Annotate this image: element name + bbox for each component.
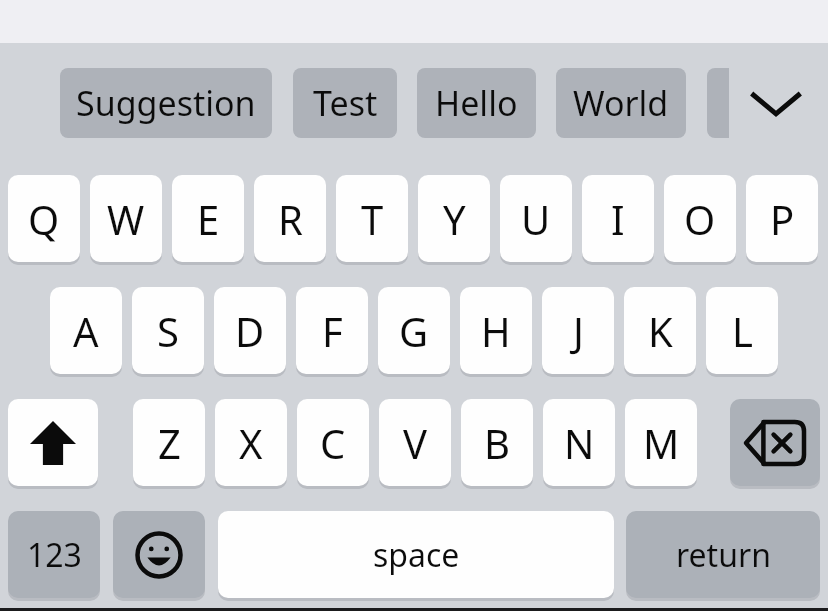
staticText: C: [320, 416, 346, 470]
button[interactable]: Emoji: [113, 511, 205, 598]
button[interactable]: U: [500, 175, 572, 262]
button[interactable]: Y: [418, 175, 490, 262]
button[interactable]: V: [379, 399, 451, 486]
button[interactable]: Backspace: [730, 399, 820, 486]
staticText: F: [322, 304, 343, 358]
staticText: G: [399, 304, 429, 358]
button[interactable]: C: [297, 399, 369, 486]
staticText: T: [361, 192, 384, 246]
button[interactable]: J: [542, 287, 614, 374]
staticText: I: [611, 192, 625, 246]
button[interactable]: T: [336, 175, 408, 262]
button[interactable]: H: [460, 287, 532, 374]
button[interactable]: D: [214, 287, 286, 374]
staticText: H: [481, 304, 511, 358]
button[interactable]: O: [664, 175, 736, 262]
staticText: Z: [158, 416, 181, 470]
button[interactable]: M: [625, 399, 697, 486]
button[interactable]: World: [556, 68, 686, 138]
staticText: Suggestion: [76, 80, 256, 126]
staticText: N: [564, 416, 595, 470]
button[interactable]: A: [50, 287, 122, 374]
staticText: W: [107, 192, 145, 246]
button[interactable]: space: [218, 511, 614, 598]
button[interactable]: return: [626, 511, 820, 598]
staticText: 123: [27, 533, 82, 577]
button[interactable]: G: [378, 287, 450, 374]
staticText: O: [684, 192, 716, 246]
button[interactable]: R: [254, 175, 326, 262]
button[interactable]: P: [746, 175, 818, 262]
staticText: V: [403, 416, 427, 470]
staticText: P: [770, 192, 795, 246]
staticText: space: [373, 533, 460, 577]
button[interactable]: Suggestion: [60, 68, 272, 138]
staticText: X: [239, 416, 263, 470]
staticText: M: [643, 416, 680, 470]
staticText: Q: [28, 192, 60, 246]
staticText: J: [573, 304, 584, 358]
button[interactable]: E: [172, 175, 244, 262]
staticText: S: [157, 304, 179, 358]
staticText: A: [73, 304, 99, 358]
staticText: L: [732, 304, 753, 358]
button[interactable]: S: [132, 287, 204, 374]
button[interactable]: Z: [133, 399, 205, 486]
staticText: World: [573, 80, 669, 126]
button[interactable]: I: [582, 175, 654, 262]
button[interactable]: L: [706, 287, 778, 374]
staticText: D: [235, 304, 265, 358]
button[interactable]: Q: [8, 175, 80, 262]
button[interactable]: Test: [293, 68, 397, 138]
staticText: Hello: [435, 80, 518, 126]
button[interactable]: Shift: [8, 399, 98, 486]
staticText: return: [676, 533, 771, 577]
button[interactable]: Hello: [417, 68, 536, 138]
staticText: Test: [313, 80, 378, 126]
staticText: K: [648, 304, 673, 358]
button[interactable]: N: [543, 399, 615, 486]
staticText: R: [278, 192, 303, 246]
button[interactable]: W: [90, 175, 162, 262]
button[interactable]: F: [296, 287, 368, 374]
staticText: E: [197, 192, 220, 246]
button[interactable]: 123: [8, 511, 100, 598]
staticText: B: [484, 416, 510, 470]
button[interactable]: Collapse suggestions: [742, 70, 810, 136]
button[interactable]: K: [624, 287, 696, 374]
staticText: U: [521, 192, 551, 246]
button[interactable]: X: [215, 399, 287, 486]
staticText: Y: [443, 192, 466, 246]
button[interactable]: [707, 68, 729, 138]
button[interactable]: B: [461, 399, 533, 486]
